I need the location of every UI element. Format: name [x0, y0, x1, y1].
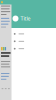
- staticText: Title: [20, 15, 30, 22]
